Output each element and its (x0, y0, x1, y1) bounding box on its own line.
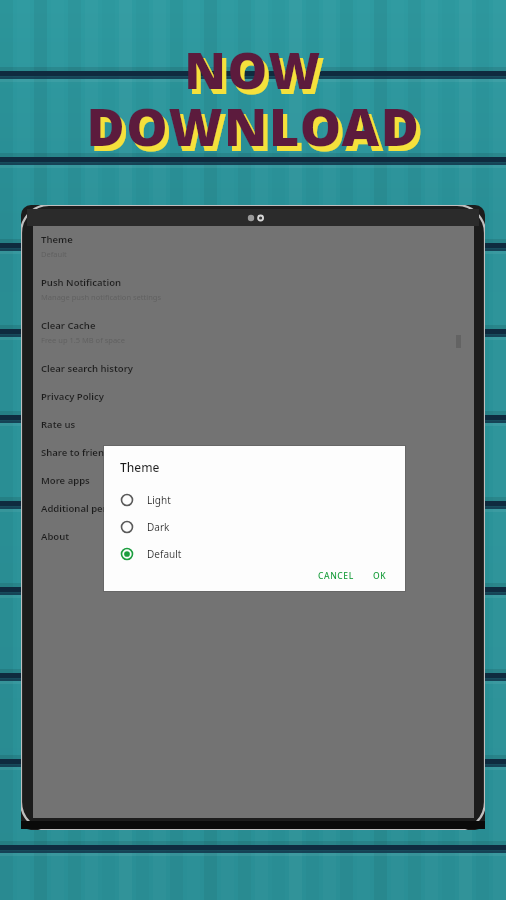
staticText: Push Notification (41, 276, 122, 289)
staticText: Dark (147, 520, 170, 534)
staticText: About (41, 530, 70, 543)
button[interactable]: Privacy Policy (41, 389, 474, 404)
staticText: Light (147, 493, 171, 507)
staticText: Rate us (41, 418, 76, 431)
button[interactable]: Dark (104, 513, 405, 540)
button[interactable]: Clear search history (41, 361, 474, 376)
button[interactable]: OK (370, 567, 390, 582)
button[interactable]: Push Notification (41, 275, 474, 303)
staticText: DOWNLOAD (86, 90, 421, 161)
staticText: Default (41, 249, 67, 259)
button[interactable]: Default (104, 540, 405, 567)
staticText: NOW (184, 36, 322, 104)
button[interactable]: Share to friends (41, 445, 474, 460)
staticText: Clear Cache (41, 319, 96, 332)
button[interactable]: Theme (41, 232, 474, 260)
staticText: Theme (41, 233, 73, 246)
button[interactable]: Additional permissions (41, 501, 474, 516)
staticText: Default (147, 547, 182, 561)
staticText: Share to friends (41, 446, 115, 459)
staticText: More apps (41, 474, 90, 487)
staticText: DOWNLOAD (90, 95, 425, 166)
staticText: Free up 1.5 MB of space (41, 335, 125, 345)
button[interactable]: Clear Cache (41, 318, 474, 346)
button[interactable]: CANCEL (315, 567, 357, 582)
staticText: CANCEL (318, 570, 354, 579)
staticText: OK (373, 570, 387, 579)
staticText: NOW (188, 41, 326, 109)
button[interactable]: Light (104, 486, 405, 513)
staticText: Manage push notification settings (41, 292, 161, 302)
staticText: Clear search history (41, 362, 133, 375)
button[interactable]: More apps (41, 473, 474, 488)
staticText: Privacy Policy (41, 390, 104, 403)
button[interactable]: Rate us (41, 417, 474, 432)
staticText: Theme (120, 459, 160, 475)
button[interactable]: About (41, 529, 474, 544)
staticText: Additional permissions (41, 502, 148, 515)
